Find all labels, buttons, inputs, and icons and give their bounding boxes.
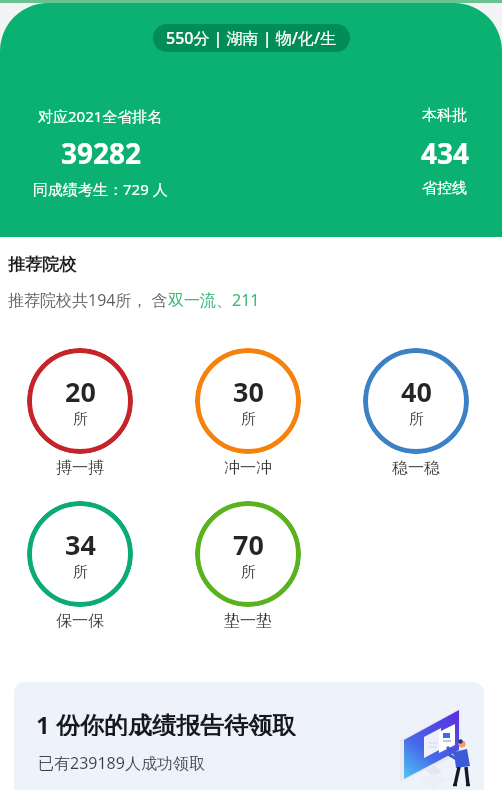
- staticText: 39282: [61, 134, 142, 172]
- staticText: 推荐院校共194所， 含: [8, 289, 168, 311]
- button[interactable]: 20: [27, 348, 133, 454]
- staticText: 推荐院校: [8, 254, 76, 275]
- staticText: 同成绩考生：729 人: [33, 179, 168, 199]
- staticText: 垫一垫: [224, 611, 272, 631]
- staticText: 34: [65, 526, 96, 563]
- staticText: 70: [233, 526, 264, 563]
- staticText: 所: [241, 563, 256, 582]
- staticText: 434: [421, 134, 470, 172]
- staticText: 保一保: [56, 611, 104, 631]
- staticText: 30: [233, 373, 264, 410]
- staticText: 对应2021全省排名: [38, 106, 163, 126]
- staticText: 20: [65, 373, 96, 410]
- staticText: 所: [73, 563, 88, 582]
- staticText: 冲一冲: [224, 458, 272, 478]
- staticText: 已有239189人成功领取: [38, 752, 205, 774]
- staticText: 所: [73, 410, 88, 429]
- staticText: 所: [241, 410, 256, 429]
- staticText: 所: [409, 410, 424, 429]
- staticText: 40: [401, 373, 432, 410]
- staticText: 搏一搏: [56, 458, 104, 478]
- staticText: 本科批: [422, 106, 467, 125]
- staticText: 1 份你的成绩报告待领取: [36, 708, 296, 736]
- button[interactable]: 40: [363, 348, 469, 454]
- staticText: 稳一稳: [392, 458, 440, 478]
- button[interactable]: 30: [195, 348, 301, 454]
- button[interactable]: 1 份你的成绩报告待领取: [14, 682, 484, 790]
- button[interactable]: 70: [195, 501, 301, 607]
- staticText: 省控线: [422, 179, 467, 198]
- staticText: 550分 | 湖南 | 物/化/生: [166, 27, 337, 49]
- button[interactable]: 550分 | 湖南 | 物/化/生: [153, 24, 350, 52]
- button[interactable]: 34: [27, 501, 133, 607]
- staticText: 双一流、211: [168, 289, 260, 311]
